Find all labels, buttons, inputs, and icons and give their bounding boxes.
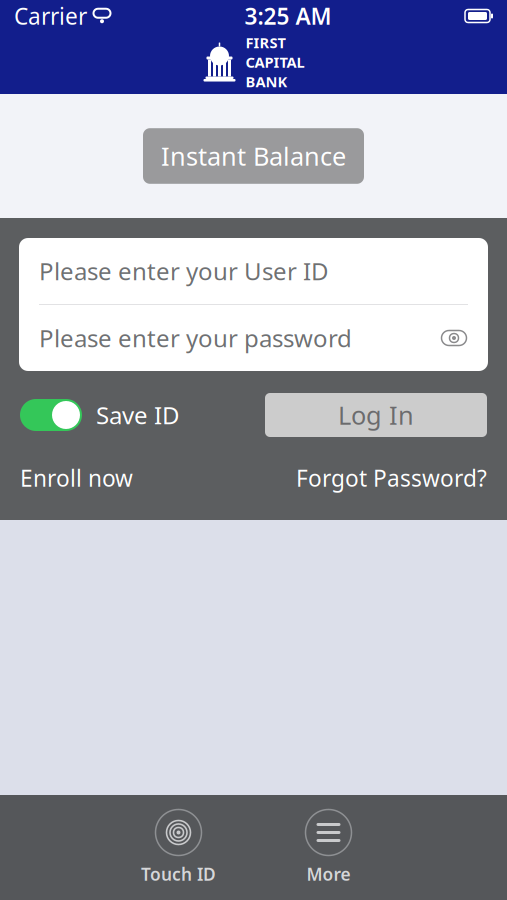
button[interactable]: More: [253, 807, 403, 887]
button[interactable]: Save ID: [20, 399, 180, 431]
button[interactable]: Enroll now: [20, 463, 133, 493]
staticText: Instant Balance: [161, 139, 346, 173]
staticText: Touch ID: [141, 862, 216, 885]
staticText: CAPITAL: [245, 52, 304, 72]
staticText: Please enter your password: [39, 322, 352, 354]
staticText: Enroll now: [20, 463, 133, 493]
staticText: Carrier: [14, 1, 87, 31]
staticText: 3:25 AM: [244, 1, 331, 31]
staticText: Forgot Password?: [296, 463, 487, 493]
staticText: BANK: [245, 72, 287, 91]
staticText: Save ID: [96, 399, 180, 431]
button[interactable]: Instant Balance: [143, 128, 364, 184]
staticText: More: [306, 862, 350, 885]
staticText: Log In: [338, 398, 414, 432]
button[interactable]: Please enter your User ID: [19, 238, 488, 304]
button[interactable]: Please enter your password: [19, 305, 488, 371]
button[interactable]: Touch ID: [103, 807, 253, 887]
button[interactable]: Forgot Password?: [296, 463, 487, 493]
button[interactable]: Log In: [265, 393, 487, 437]
staticText: Please enter your User ID: [39, 255, 329, 287]
staticText: FIRST: [245, 33, 285, 52]
